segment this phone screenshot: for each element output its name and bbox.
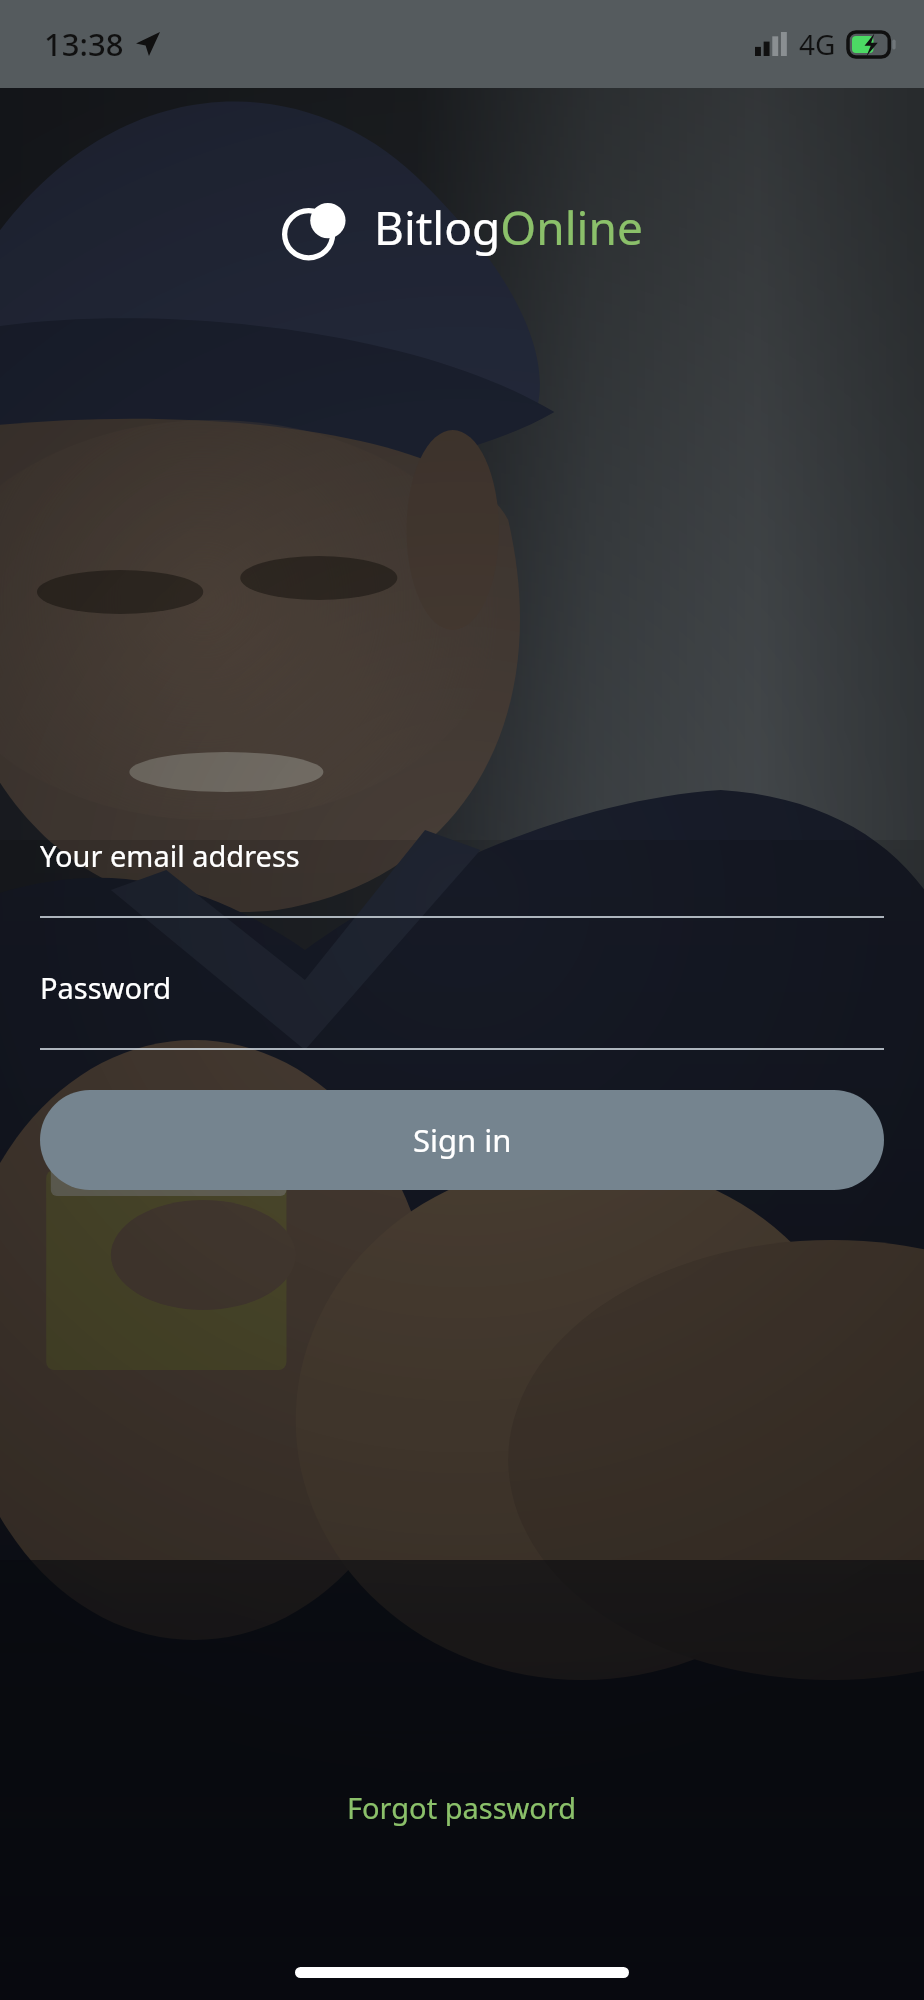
staticText: Your email address <box>40 836 300 875</box>
staticText: Password <box>40 968 172 1007</box>
staticText: BitlogOnline <box>374 196 643 259</box>
staticText: Sign in <box>413 1119 512 1161</box>
staticText: 4G <box>799 25 836 63</box>
other: Battery charging <box>848 32 896 57</box>
staticText: 13:38 <box>44 23 124 65</box>
button[interactable]: Your email address <box>40 832 884 918</box>
button[interactable]: Password <box>40 964 884 1050</box>
button[interactable]: Forgot password <box>321 1778 603 1837</box>
button[interactable]: Sign in <box>40 1090 884 1190</box>
staticText: Forgot password <box>347 1788 577 1827</box>
other: Cellular signal <box>755 32 787 56</box>
other: Location active <box>136 32 160 56</box>
